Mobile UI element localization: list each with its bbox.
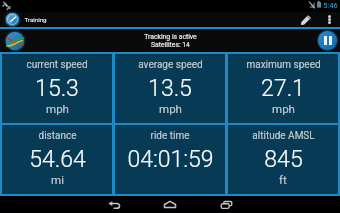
staticText: ride time [150,130,190,142]
button[interactable]: Home [148,196,192,213]
button[interactable]: altitude AMSL [228,125,338,194]
staticText: 845 [264,146,303,173]
button[interactable]: average speed [115,54,225,123]
staticText: mph [272,102,295,115]
staticText: Satellites: 14 [151,41,190,49]
button[interactable]: Pause [317,30,338,51]
staticText: 15.3 [35,75,79,102]
button[interactable]: Edit [293,12,319,27]
button[interactable]: distance [2,125,112,194]
staticText: maximum speed [246,59,321,71]
staticText: 5:46 [323,1,338,10]
staticText: distance [38,130,77,142]
button[interactable]: maximum speed [228,54,338,123]
staticText: current speed [26,59,88,71]
button[interactable]: Recent apps [204,196,248,213]
staticText: Training [24,16,47,23]
staticText: 13.5 [148,75,192,102]
staticText: altitude AMSL [252,130,315,142]
staticText: 04:01:59 [127,146,214,173]
staticText: average speed [138,59,203,71]
button[interactable]: More options [319,12,340,27]
button[interactable]: current speed [2,54,112,123]
staticText: mph [159,102,182,115]
staticText: Tracking is active [144,33,197,41]
button[interactable]: Back [92,196,136,213]
button[interactable]: ride time [115,125,225,194]
staticText: 54.64 [29,146,86,173]
staticText: 27.1 [261,75,305,102]
staticText: mph [46,102,69,115]
staticText: mi [51,173,64,186]
staticText: ft [279,173,287,186]
